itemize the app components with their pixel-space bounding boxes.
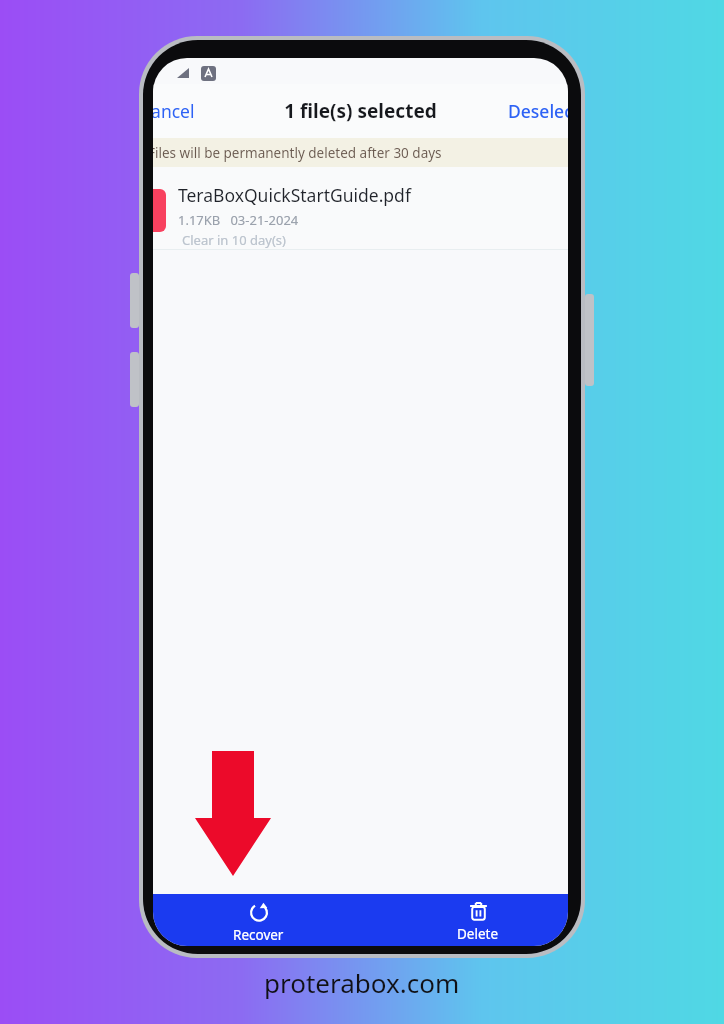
staticText: 1.17KB 03-21-2024 (178, 211, 299, 229)
staticText: TeraBoxQuickStartGuide.pdf (178, 183, 411, 207)
staticText: Recover (233, 926, 284, 944)
button[interactable]: Cancel (153, 84, 205, 138)
button[interactable]: Delete (413, 894, 543, 946)
other: Delete (468, 901, 489, 922)
staticText: 1 file(s) selected (284, 98, 437, 124)
other: Recover (248, 901, 270, 923)
staticText: Deselect (508, 99, 568, 123)
staticText: Delete (457, 925, 499, 943)
staticText: Cancel (153, 99, 195, 123)
staticText: Clear in 10 day(s) (182, 231, 286, 249)
button[interactable]: TeraBoxQuickStartGuide.pdf (153, 167, 568, 249)
button[interactable]: Deselect (508, 84, 568, 138)
staticText: Files will be permanently deleted after … (153, 144, 442, 162)
staticText: proterabox.com (264, 965, 460, 1000)
button[interactable]: Recover (183, 894, 333, 946)
